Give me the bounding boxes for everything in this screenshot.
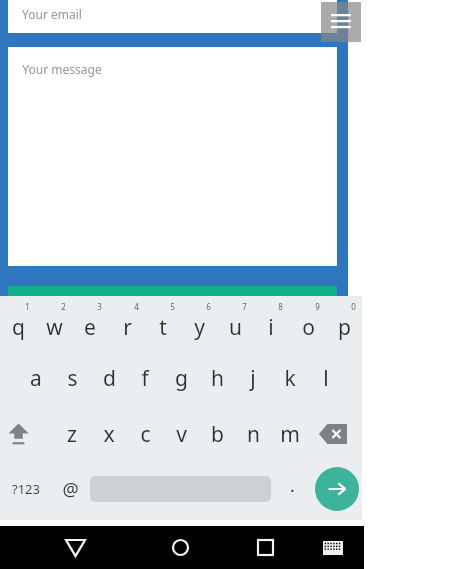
staticText: g <box>175 364 188 393</box>
staticText: t <box>159 313 167 342</box>
button[interactable]: s <box>54 354 90 402</box>
staticText: Your message <box>22 61 102 77</box>
button[interactable]: 6 <box>181 298 217 348</box>
staticText: o <box>302 313 315 342</box>
button[interactable]: Your message <box>8 47 337 266</box>
staticText: 5 <box>170 301 175 312</box>
staticText: d <box>103 364 116 393</box>
button[interactable]: g <box>163 354 199 402</box>
button[interactable]: n <box>235 410 271 458</box>
button[interactable]: a <box>18 354 54 402</box>
button[interactable]: Enter <box>315 467 359 511</box>
button[interactable]: 7 <box>217 298 253 348</box>
button[interactable]: v <box>163 410 199 458</box>
staticText: p <box>338 313 351 342</box>
button[interactable]: 0 <box>326 298 362 348</box>
button[interactable]: j <box>235 354 271 402</box>
button[interactable]: . <box>275 464 309 514</box>
button[interactable]: 2 <box>36 298 72 348</box>
staticText: n <box>247 420 260 449</box>
button[interactable]: 9 <box>290 298 326 348</box>
button[interactable]: Backspace <box>315 410 351 458</box>
staticText: e <box>84 313 96 342</box>
staticText: 1 <box>25 301 30 312</box>
staticText: u <box>229 313 242 342</box>
staticText: . <box>290 473 295 498</box>
staticText: a <box>30 364 42 393</box>
staticText: r <box>123 313 132 342</box>
button[interactable]: z <box>54 410 90 458</box>
staticText: 2 <box>61 301 66 312</box>
button[interactable]: 8 <box>253 298 289 348</box>
staticText: 9 <box>315 301 320 312</box>
staticText: h <box>211 364 224 393</box>
staticText: q <box>12 313 25 342</box>
button[interactable]: Recent apps <box>240 526 290 569</box>
staticText: x <box>103 420 115 449</box>
button[interactable]: x <box>91 410 127 458</box>
staticText: m <box>280 420 300 449</box>
button[interactable]: d <box>91 354 127 402</box>
staticText: z <box>67 420 77 449</box>
staticText: @ <box>62 477 79 502</box>
staticText: w <box>46 313 63 342</box>
button[interactable]: b <box>199 410 235 458</box>
button[interactable]: 5 <box>145 298 181 348</box>
staticText: 0 <box>351 301 356 312</box>
staticText: y <box>194 313 205 342</box>
button[interactable] <box>8 286 337 308</box>
staticText: Your email <box>22 6 82 22</box>
button[interactable]: Menu <box>321 2 361 42</box>
button[interactable]: Switch keyboard <box>308 526 358 569</box>
staticText: ?123 <box>12 480 40 498</box>
button[interactable]: ?123 <box>0 464 52 514</box>
button[interactable]: c <box>127 410 163 458</box>
button[interactable]: h <box>199 354 235 402</box>
button[interactable]: Back <box>50 526 100 569</box>
staticText: l <box>323 364 329 393</box>
button[interactable]: m <box>272 410 308 458</box>
button[interactable]: f <box>127 354 163 402</box>
button[interactable]: l <box>308 354 344 402</box>
staticText: 8 <box>278 301 283 312</box>
staticText: k <box>284 364 296 393</box>
staticText: i <box>268 313 274 342</box>
staticText: 4 <box>134 301 139 312</box>
staticText: 3 <box>97 301 102 312</box>
button[interactable]: Home <box>155 526 205 569</box>
staticText: c <box>140 420 151 449</box>
staticText: j <box>250 364 256 393</box>
button[interactable]: Shift <box>0 410 36 458</box>
staticText: 6 <box>206 301 211 312</box>
staticText: v <box>176 420 187 449</box>
staticText: 7 <box>242 301 247 312</box>
button[interactable]: 3 <box>72 298 108 348</box>
staticText: f <box>141 364 149 393</box>
button[interactable]: @ <box>52 464 88 514</box>
staticText: s <box>67 364 78 393</box>
button[interactable]: 4 <box>109 298 145 348</box>
button[interactable]: 1 <box>0 298 36 348</box>
button[interactable]: k <box>272 354 308 402</box>
button[interactable]: Your email <box>8 0 337 33</box>
staticText: b <box>211 420 224 449</box>
